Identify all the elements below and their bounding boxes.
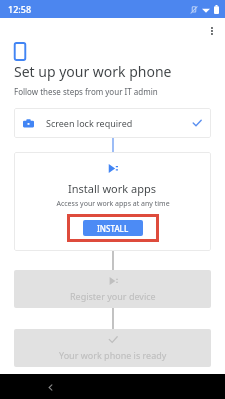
button[interactable]: More options (202, 21, 222, 41)
button[interactable]: Screen lock required (14, 108, 211, 138)
button[interactable]: Register your device (14, 270, 211, 308)
staticText: Set up your work phone (14, 62, 172, 81)
staticText: Screen lock required (46, 117, 133, 129)
button[interactable]: Your work phone is ready (14, 329, 211, 367)
staticText: Your work phone is ready (59, 349, 167, 361)
staticText: Register your device (70, 290, 156, 302)
staticText: INSTALL (97, 223, 129, 234)
staticText: Follow these steps from your IT admin (14, 86, 158, 97)
button[interactable]: INSTALL (83, 220, 143, 236)
staticText: 12:58 (8, 3, 32, 15)
button[interactable]: Back (40, 377, 60, 397)
staticText: Access your work apps at any time (56, 199, 170, 209)
staticText: Install work apps (68, 181, 157, 196)
